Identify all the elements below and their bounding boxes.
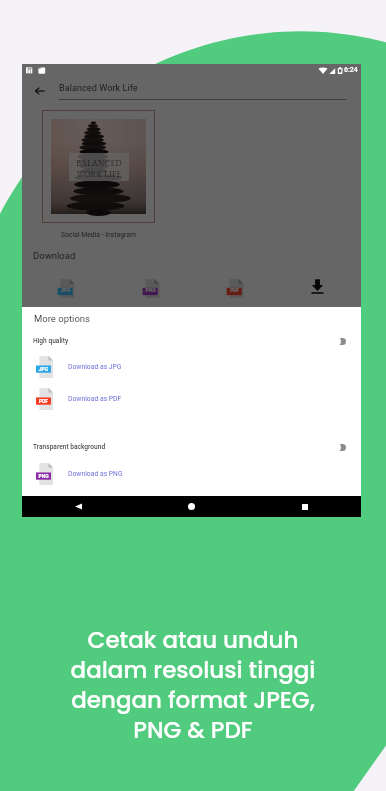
staticText: More options bbox=[34, 313, 90, 324]
button[interactable]: JPG bbox=[22, 354, 361, 380]
button[interactable]: Home bbox=[135, 496, 248, 517]
staticText: 6:24 bbox=[344, 66, 358, 74]
staticText: Social Media - Instagram bbox=[42, 231, 155, 239]
button[interactable]: Recent apps bbox=[248, 496, 361, 517]
staticText: Download as PDF bbox=[68, 395, 122, 403]
button[interactable]: Balanced Work Life design bbox=[42, 110, 155, 223]
staticText: JPG bbox=[36, 366, 51, 372]
staticText: PNG bbox=[143, 287, 158, 293]
staticText: PNG bbox=[36, 473, 51, 479]
button[interactable]: Transparent background bbox=[22, 439, 361, 455]
button[interactable]: Back bbox=[27, 78, 53, 104]
staticText: High quality bbox=[33, 337, 69, 345]
staticText: Download as PNG bbox=[68, 470, 123, 478]
staticText: BALANCED WORK LIFE bbox=[69, 158, 129, 180]
staticText: Download bbox=[33, 250, 76, 261]
button[interactable]: PDF bbox=[225, 279, 244, 298]
button[interactable]: JPG bbox=[56, 279, 75, 298]
staticText: PDF bbox=[36, 398, 51, 404]
staticText: Cetak atau unduh dalam resolusi tinggi d… bbox=[0, 624, 386, 746]
button[interactable]: Download bbox=[310, 279, 325, 294]
button[interactable]: PDF bbox=[22, 386, 361, 412]
button[interactable]: Back bbox=[22, 496, 135, 517]
staticText: Balanced Work Life bbox=[59, 82, 138, 93]
button[interactable]: High quality bbox=[22, 333, 361, 349]
staticText: Download as JPG bbox=[68, 363, 122, 371]
button[interactable]: PNG bbox=[141, 279, 160, 298]
button[interactable]: PNG bbox=[22, 461, 361, 487]
staticText: Transparent background bbox=[33, 443, 106, 451]
staticText: JPG bbox=[58, 287, 73, 293]
staticText: PDF bbox=[227, 287, 242, 293]
